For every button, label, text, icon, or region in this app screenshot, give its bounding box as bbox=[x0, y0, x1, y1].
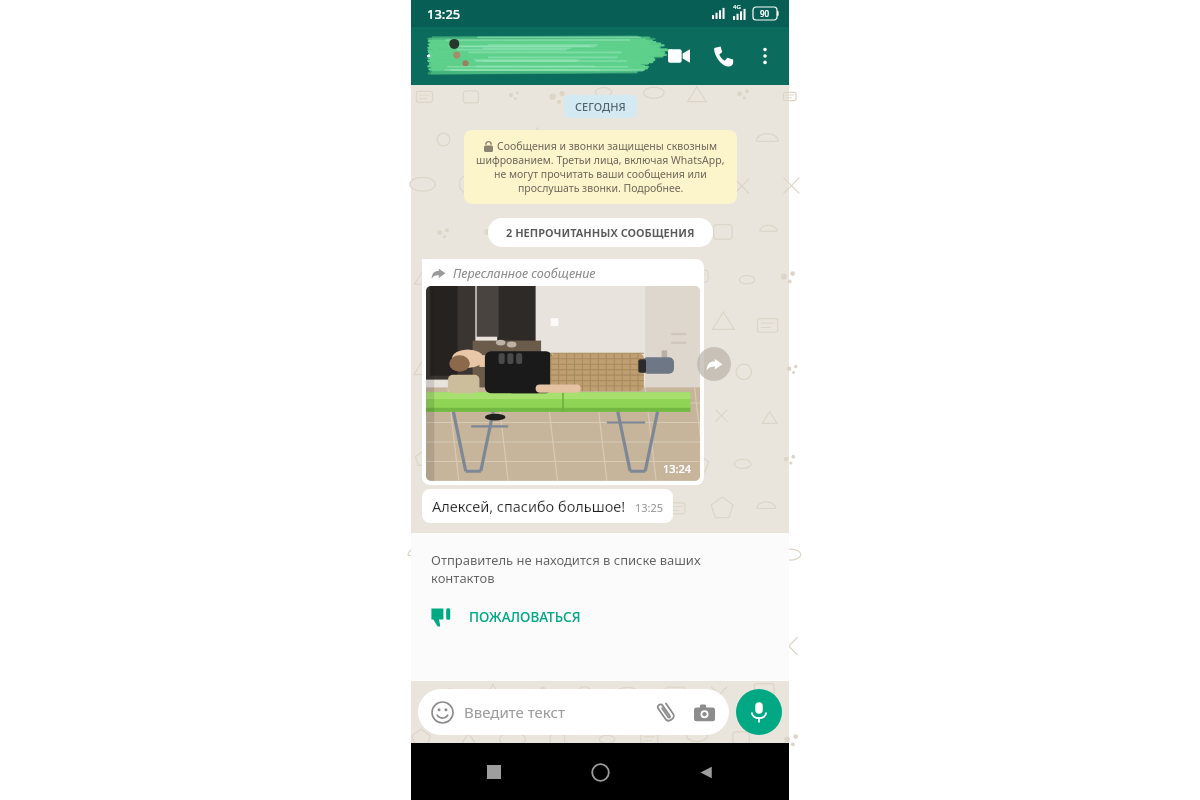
staticText: Сообщения и звонки защищены сквозным bbox=[497, 139, 717, 153]
button[interactable]: Voice call bbox=[701, 34, 745, 78]
button[interactable]: Алексей, спасибо большое! bbox=[432, 496, 664, 516]
button[interactable]: Video call bbox=[657, 34, 701, 78]
button[interactable]: Record voice message bbox=[736, 689, 782, 735]
button[interactable]: Сообщения и звонки защищены сквозным bbox=[476, 139, 725, 195]
staticText: прослушать звонки. Подробнее. bbox=[518, 181, 684, 195]
staticText: СЕГОДНЯ bbox=[575, 99, 626, 114]
button[interactable]: Back bbox=[683, 749, 729, 795]
staticText: 90 bbox=[760, 8, 770, 19]
staticText: 13:25 bbox=[635, 500, 664, 515]
staticText: 2 НЕПРОЧИТАННЫХ СООБЩЕНИЯ bbox=[506, 225, 695, 240]
button[interactable]: Attach bbox=[649, 695, 683, 729]
button[interactable]: Camera bbox=[687, 695, 721, 729]
staticText: не могут прочитать ваши сообщения или bbox=[494, 167, 707, 181]
staticText: Введите текст bbox=[464, 702, 649, 722]
staticText: Алексей, спасибо большое! bbox=[432, 496, 626, 516]
button[interactable]: ПОЖАЛОВАТЬСЯ bbox=[431, 607, 581, 627]
button[interactable]: Home bbox=[577, 749, 623, 795]
staticText: 13:25 bbox=[427, 5, 461, 23]
staticText: контактов bbox=[431, 569, 495, 587]
staticText: ПОЖАЛОВАТЬСЯ bbox=[469, 608, 581, 626]
staticText: Пересланное сообщение bbox=[453, 265, 596, 282]
button[interactable]: Emoji bbox=[418, 689, 729, 735]
button[interactable]: Back bbox=[417, 36, 457, 76]
staticText: шифрованием. Третьи лица, включая WhatsA… bbox=[476, 153, 725, 167]
button[interactable]: Recent apps bbox=[471, 749, 517, 795]
button[interactable]: Emoji bbox=[428, 698, 456, 726]
button[interactable]: More options bbox=[745, 36, 785, 76]
staticText: 13:24 bbox=[663, 461, 692, 476]
staticText: Отправитель не находится в списке ваших bbox=[431, 551, 701, 569]
button[interactable]: Пересланное сообщение bbox=[426, 263, 700, 481]
staticText: 4G bbox=[733, 3, 741, 11]
button[interactable]: Forward bbox=[697, 347, 731, 381]
